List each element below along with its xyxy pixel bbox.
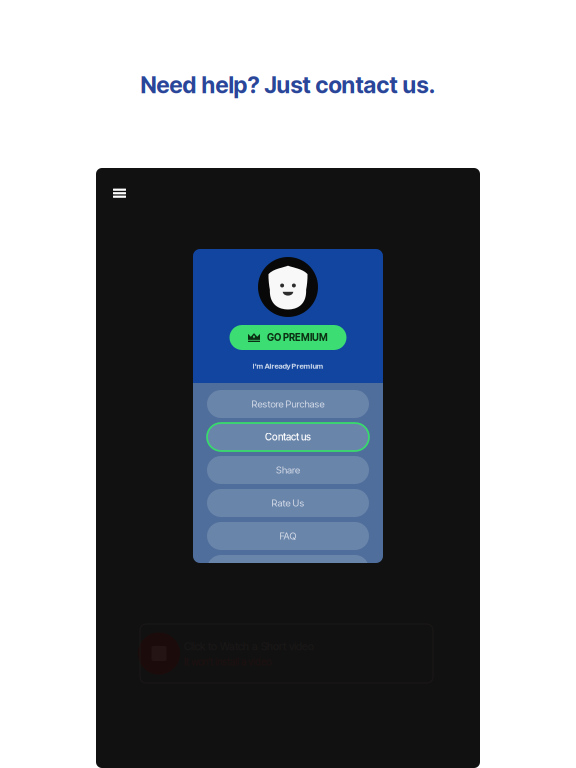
button[interactable]: Terms of Service [207, 555, 369, 583]
staticText: FAQ [279, 530, 296, 542]
button[interactable]: FAQ [207, 522, 369, 550]
button[interactable]: Restore Purchase [207, 390, 369, 418]
button[interactable]: Contact us [207, 423, 369, 451]
staticText: Restore Purchase [251, 398, 324, 410]
button[interactable]: Menu [108, 182, 130, 204]
button[interactable]: Click to Watch a Short video [140, 624, 433, 683]
staticText: Contact us [265, 431, 311, 443]
staticText: GO PREMIUM [267, 332, 328, 343]
button[interactable]: I'm Already Premium [203, 359, 373, 373]
staticText: Need help? Just contact us. [140, 71, 435, 99]
button[interactable]: Rate Us [207, 489, 369, 517]
staticText: Rate Us [271, 497, 304, 509]
button[interactable]: GO PREMIUM [229, 325, 346, 350]
staticText: It won't install a video [184, 656, 271, 668]
staticText: I'm Already Premium [252, 361, 323, 370]
button[interactable]: Share [207, 456, 369, 484]
staticText: Share [276, 464, 300, 476]
